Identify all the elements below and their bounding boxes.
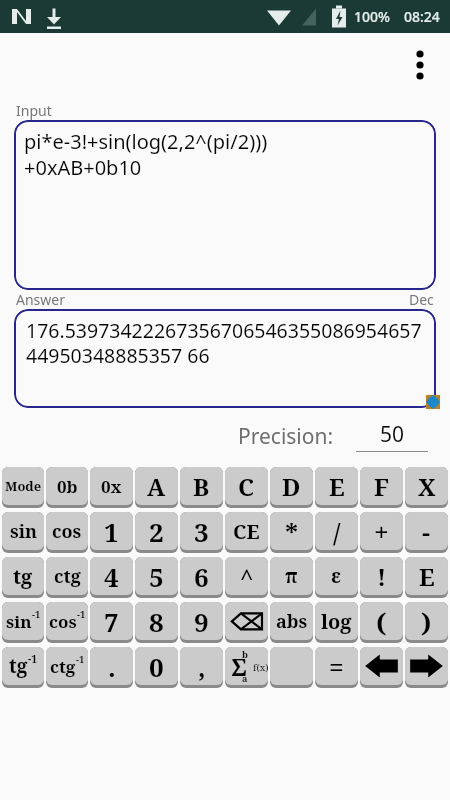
button[interactable]: B (180, 467, 223, 505)
staticText: -1 (76, 653, 85, 666)
button[interactable]: X (405, 467, 448, 505)
button[interactable]: ε (315, 557, 358, 595)
button[interactable]: ^ (225, 557, 268, 595)
button[interactable]: log (315, 602, 358, 640)
staticText: 9 (194, 604, 209, 639)
button[interactable]: C (225, 467, 268, 505)
staticText: X (418, 470, 436, 503)
staticText: a (242, 672, 248, 684)
button[interactable]: / (315, 512, 358, 550)
button[interactable]: More options (398, 43, 442, 87)
staticText: 5 (149, 559, 164, 594)
staticText: cos (49, 610, 77, 633)
staticText: ctg (54, 564, 81, 589)
button[interactable]: F (360, 467, 403, 505)
staticText: tg (13, 563, 33, 590)
button[interactable]: ) (405, 602, 448, 640)
staticText: B (193, 470, 210, 503)
staticText: ) (421, 604, 432, 639)
button[interactable]: 0x (90, 467, 133, 505)
staticText: , (198, 649, 206, 684)
staticText: CE (233, 518, 260, 545)
staticText: F (374, 470, 389, 503)
button[interactable]: A (135, 467, 178, 505)
button[interactable]: cos (46, 602, 88, 640)
button[interactable]: Backspace (225, 602, 268, 640)
button[interactable]: 8 (135, 602, 178, 640)
staticText: . (108, 649, 116, 684)
button[interactable]: π (270, 557, 313, 595)
button[interactable]: 176.539734222673567065463550869546574495… (14, 309, 436, 408)
staticText: * (285, 514, 299, 549)
staticText: A (147, 470, 166, 503)
staticText: E (419, 560, 435, 593)
staticText: tg (9, 653, 28, 679)
staticText: + (374, 514, 389, 549)
button[interactable]: ! (360, 557, 403, 595)
button[interactable]: 5 (135, 557, 178, 595)
button[interactable]: Move cursor left (360, 647, 403, 685)
staticText: sin (6, 610, 32, 633)
button[interactable]: 0 (135, 647, 178, 685)
button[interactable]: E (315, 467, 358, 505)
button[interactable]: CE (225, 512, 268, 550)
staticText: 0 (149, 649, 164, 684)
button[interactable]: ( (360, 602, 403, 640)
button[interactable]: 1 (90, 512, 133, 550)
button[interactable]: 7 (90, 602, 133, 640)
staticText: Precision: (238, 422, 334, 451)
button[interactable]: tg (2, 557, 44, 595)
button[interactable]: * (270, 512, 313, 550)
button[interactable]: - (405, 512, 448, 550)
staticText: 176.539734222673567065463550869546574495… (26, 317, 428, 368)
button[interactable]: Blank (270, 647, 313, 685)
button[interactable]: tg (2, 647, 44, 685)
staticText: / (333, 514, 341, 549)
staticText: 08:24 (404, 7, 440, 26)
staticText: Answer (16, 290, 65, 309)
button[interactable]: D (270, 467, 313, 505)
button[interactable]: E (405, 557, 448, 595)
button[interactable]: 50 (356, 420, 428, 452)
button[interactable]: = (315, 647, 358, 685)
staticText: C (238, 470, 255, 503)
button[interactable]: Mode (2, 467, 44, 505)
button[interactable]: Move cursor right (405, 647, 448, 685)
button[interactable]: 9 (180, 602, 223, 640)
staticText: 3 (194, 514, 209, 549)
button[interactable]: + (360, 512, 403, 550)
staticText: Mode (5, 477, 42, 495)
staticText: 1 (104, 514, 119, 549)
staticText: ! (377, 560, 387, 593)
button[interactable]: , (180, 647, 223, 685)
button[interactable]: ctg (46, 647, 88, 685)
button[interactable]: sin (2, 512, 44, 550)
button[interactable]: 0b (46, 467, 88, 505)
staticText: 100% (354, 7, 390, 26)
button[interactable]: Resize answer field (422, 391, 444, 413)
staticText: 2 (149, 514, 164, 549)
staticText: - (422, 514, 431, 549)
staticText: -1 (32, 608, 41, 621)
button[interactable]: 2 (135, 512, 178, 550)
staticText: b (242, 648, 248, 660)
button[interactable]: Summation (225, 647, 268, 685)
button[interactable]: ctg (46, 557, 88, 595)
staticText: f(x) (253, 661, 268, 674)
button[interactable]: 3 (180, 512, 223, 550)
button[interactable]: pi*e-3!+sin(log(2,2^(pi/2))) +0xAB+0b10 (14, 120, 436, 290)
button[interactable]: . (90, 647, 133, 685)
staticText: Dec (409, 290, 434, 309)
button[interactable]: cos (46, 512, 88, 550)
button[interactable]: abs (270, 602, 313, 640)
staticText: ^ (240, 560, 254, 593)
staticText: 50 (356, 420, 428, 449)
staticText: -1 (77, 608, 86, 621)
button[interactable]: 4 (90, 557, 133, 595)
staticText: Σ (231, 650, 248, 683)
button[interactable]: 6 (180, 557, 223, 595)
staticText: 8 (149, 604, 164, 639)
staticText: ctg (50, 655, 76, 678)
button[interactable]: sin (2, 602, 44, 640)
staticText: Input (16, 101, 52, 120)
